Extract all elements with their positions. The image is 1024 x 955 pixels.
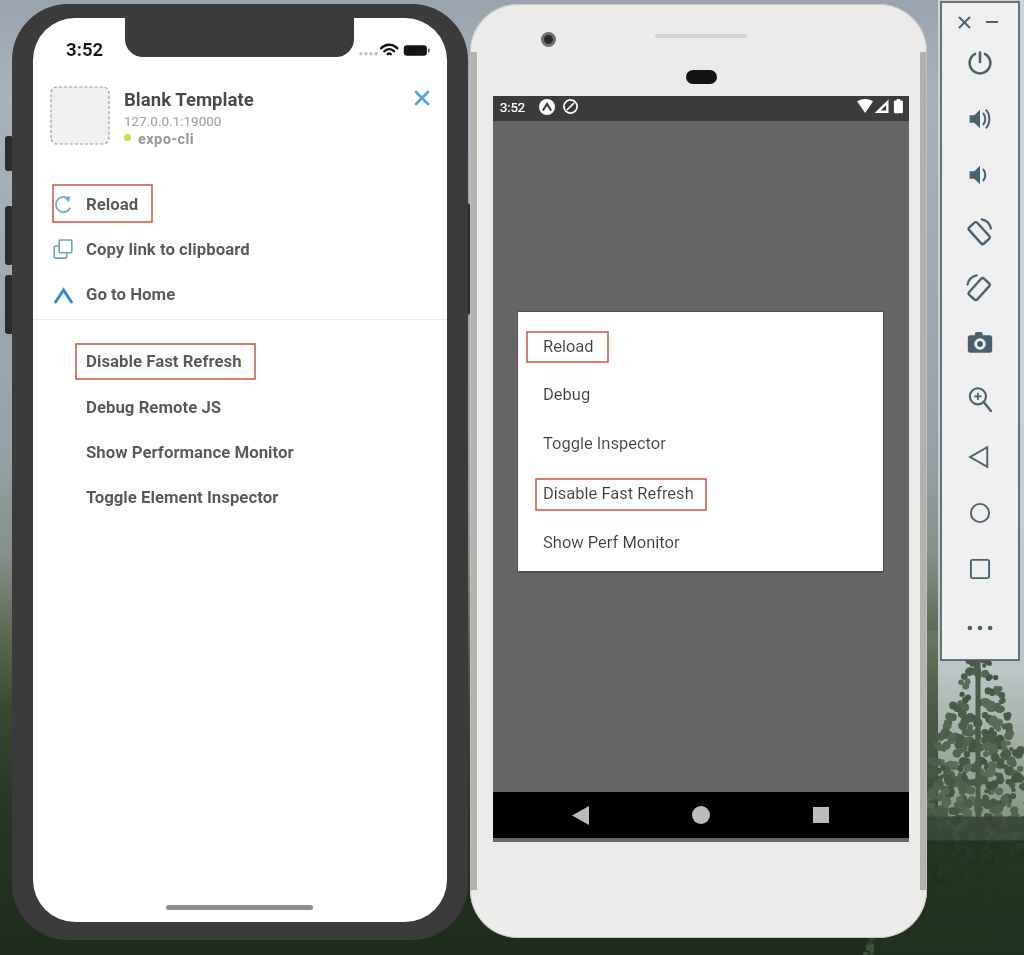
button[interactable]: Close [952,10,976,34]
staticText: Show Perf Monitor [543,533,680,552]
button[interactable]: Volume up [960,100,1000,138]
button[interactable]: Show Performance Monitor [76,438,316,466]
staticText: expo-cli [138,130,195,147]
staticText: 127.0.0.1:19000 [124,113,222,129]
button[interactable]: Copy link to clipboard [53,231,447,267]
staticText: Reload [86,194,139,214]
staticText: 3:52 [66,39,104,61]
staticText: 3:52 [500,100,526,115]
button[interactable]: Volume down [960,156,1000,194]
staticText: Toggle Inspector [543,434,666,453]
button[interactable]: Close [403,79,440,116]
staticText: Go to Home [86,284,176,304]
other: Expo [539,99,555,115]
staticText: Blank Template [124,89,254,111]
button[interactable]: Home [960,494,1000,532]
button[interactable]: Overview [960,550,1000,588]
button[interactable]: Take screenshot [960,325,1000,363]
button[interactable]: Power [960,44,1000,82]
staticText: Reload [543,337,594,356]
button[interactable]: Toggle Element Inspector [76,483,316,511]
button[interactable]: Zoom [960,381,1000,419]
staticText: Disable Fast Refresh [86,351,242,371]
button[interactable]: Recents [798,792,844,838]
button[interactable]: Back [557,792,603,838]
button[interactable]: Debug [528,372,893,416]
button[interactable]: More [960,609,1000,647]
button[interactable]: Reload [53,186,447,222]
button[interactable]: Rotate right [960,268,1000,306]
staticText: Toggle Element Inspector [86,487,279,507]
button[interactable]: Toggle Inspector [528,421,893,465]
staticText: Debug Remote JS [86,397,222,417]
button[interactable]: Disable Fast Refresh [528,471,893,515]
button[interactable]: Rotate left [960,212,1000,250]
button[interactable]: Home [678,792,724,838]
button[interactable]: Reload [528,324,893,368]
button[interactable]: Minimize [980,10,1004,34]
button[interactable]: Go to Home [53,276,447,312]
staticText: Copy link to clipboard [86,239,250,259]
staticText: Debug [543,385,591,404]
button[interactable]: Debug Remote JS [76,393,316,421]
staticText: Show Performance Monitor [86,442,294,462]
staticText: Disable Fast Refresh [543,484,694,503]
button[interactable]: Show Perf Monitor [528,520,893,564]
button[interactable]: Back [960,438,1000,476]
button[interactable]: Disable Fast Refresh [76,347,316,375]
